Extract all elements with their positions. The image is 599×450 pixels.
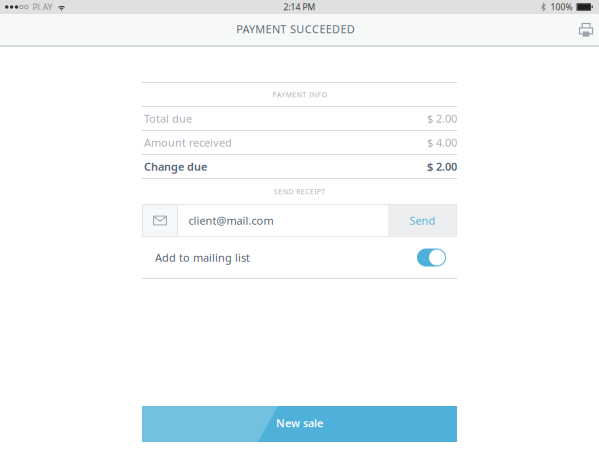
staticText: $ 2.00	[427, 159, 457, 174]
staticText: $ 2.00	[427, 111, 457, 126]
staticText: PAYMENT SUCCEEDED	[236, 22, 355, 36]
staticText: New sale	[276, 416, 323, 430]
staticText: Total due	[144, 111, 192, 126]
staticText: Send	[409, 213, 435, 228]
staticText: PLAY	[32, 1, 52, 13]
staticText: 100%	[550, 1, 572, 13]
staticText: client@mail.com	[188, 213, 273, 228]
staticText: Add to mailing list	[155, 250, 250, 265]
staticText: 2:14 PM	[283, 1, 315, 13]
button[interactable]: Send	[388, 204, 457, 237]
button[interactable]: Add to mailing list	[417, 248, 446, 266]
staticText: Change due	[144, 159, 207, 174]
staticText: $ 4.00	[427, 135, 457, 150]
staticText: Amount received	[144, 135, 232, 150]
button[interactable]: New sale	[142, 406, 457, 442]
staticText: PAYMENT INFO	[272, 90, 327, 99]
staticText: SEND RECEIPT	[274, 187, 325, 196]
button[interactable]: Print receipt	[573, 14, 599, 46]
